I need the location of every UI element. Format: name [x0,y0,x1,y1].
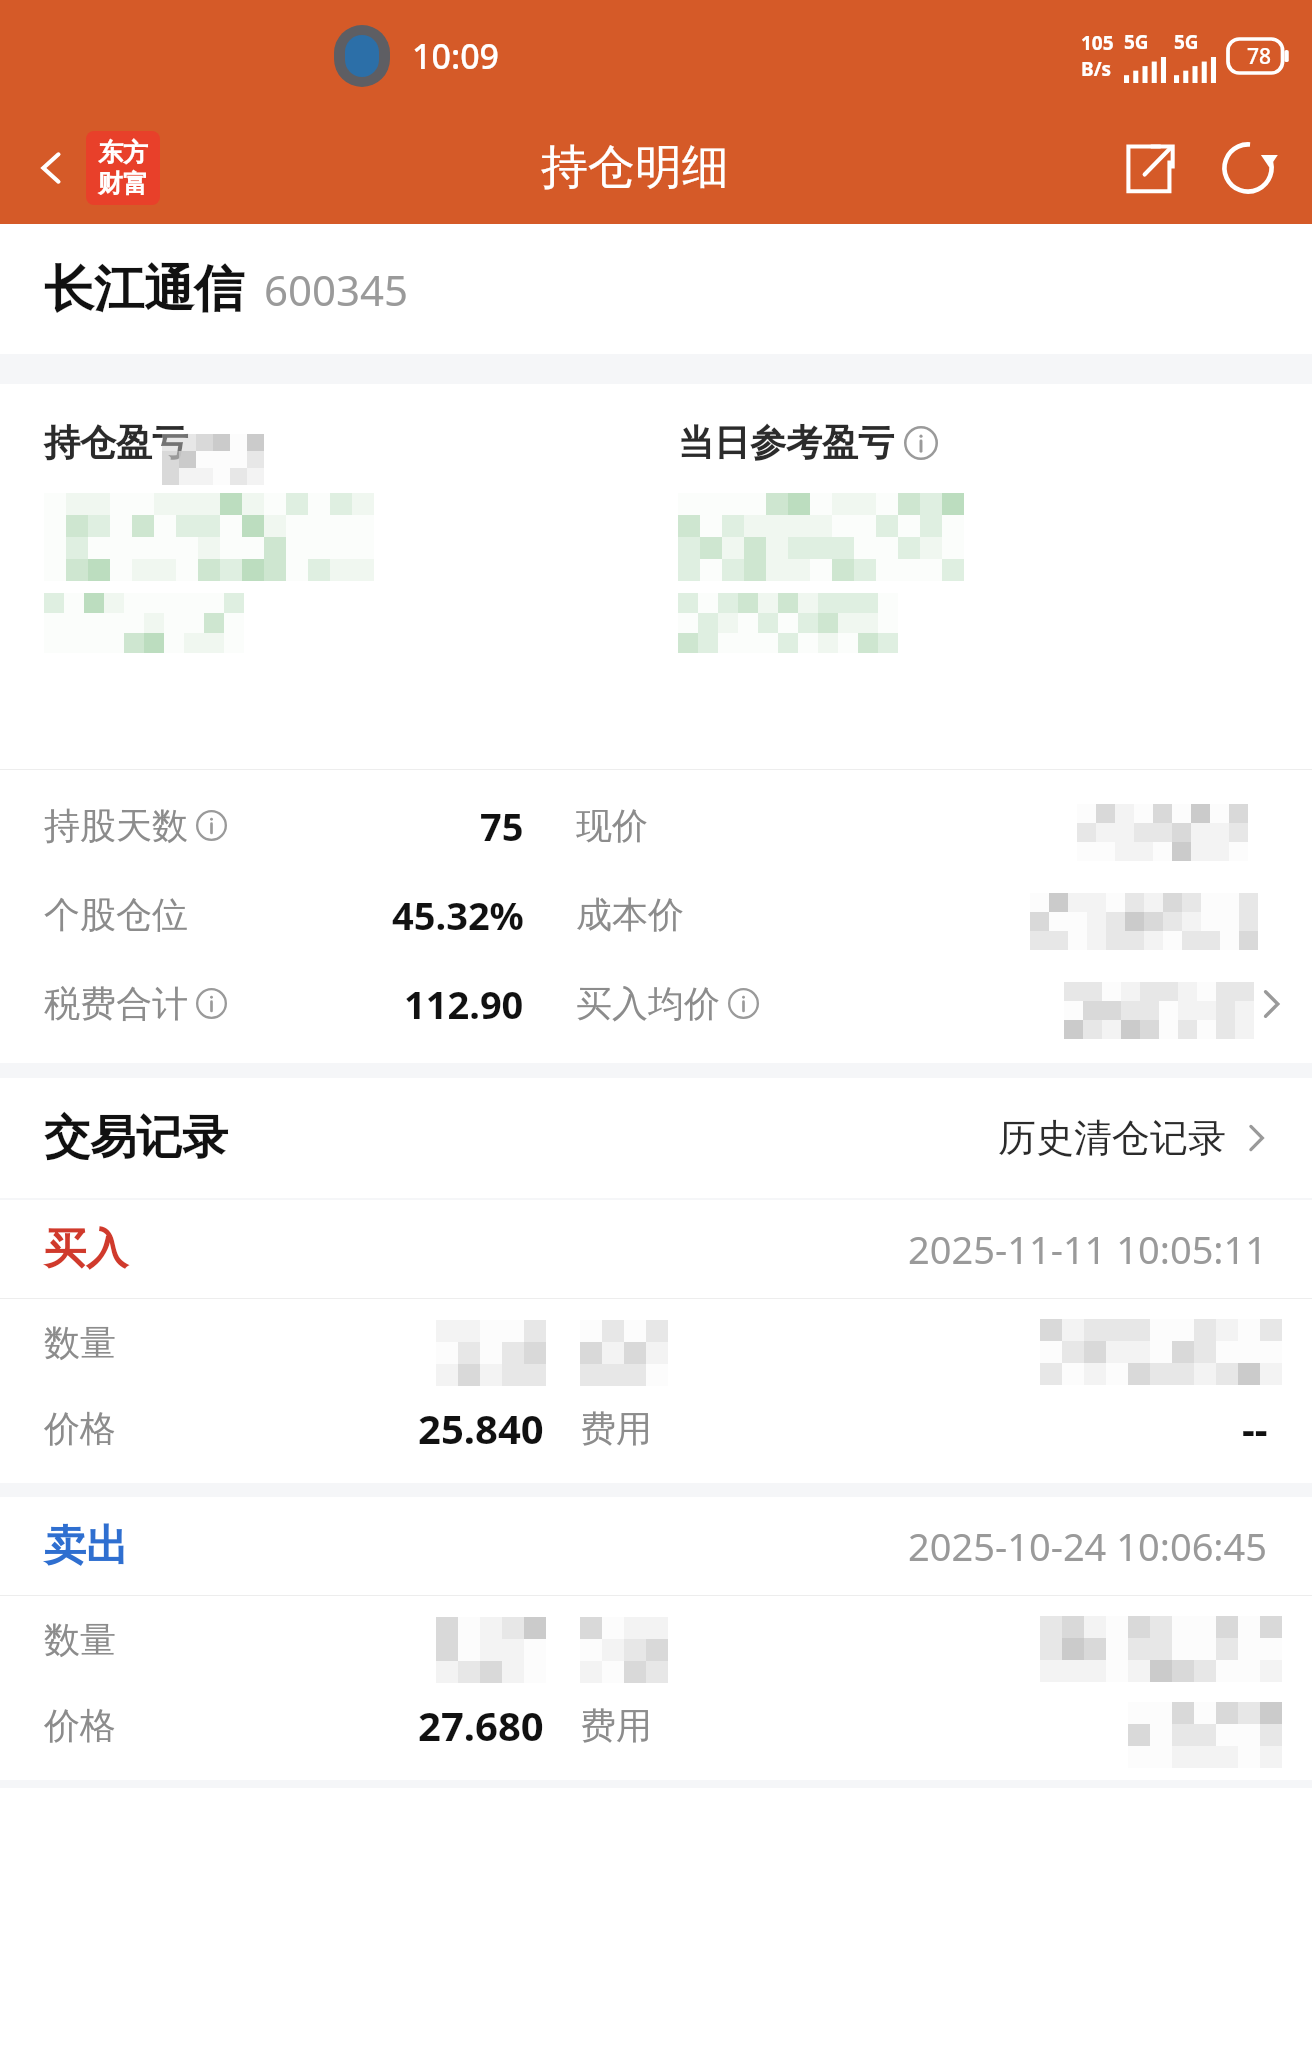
staticText: 600345 [264,261,409,318]
staticText: 费用 [580,1703,652,1748]
staticText: 5G [1174,29,1199,55]
button[interactable]: 持股天数 [0,792,1312,859]
staticText: 东方 [98,137,148,168]
button[interactable]: 历史清仓记录 [990,1106,1280,1170]
staticText: 25.840 [418,1401,544,1455]
button[interactable]: Back [24,140,80,196]
staticText: 费用 [580,1406,652,1451]
button[interactable]: 卖出 [0,1497,1312,1780]
staticText: B/s [1081,56,1112,82]
staticText: 78 [1247,42,1272,71]
staticText: 现价 [576,803,648,848]
staticText: 财富 [98,168,148,199]
staticText: 价格 [44,1406,244,1451]
staticText: 2025-11-11 10:05:11 [908,1223,1268,1275]
staticText: 75 [480,800,524,852]
staticText: 买入 [44,1223,128,1276]
staticText: 税费合计 [44,981,188,1026]
staticText: 5G [1124,29,1149,55]
staticText: 历史清仓记录 [998,1114,1226,1162]
staticText: 交易记录 [44,1109,228,1167]
staticText: 卖出 [44,1520,128,1573]
staticText: 105 [1081,30,1114,56]
button[interactable]: 长江通信 [0,224,1312,354]
staticText: 成本价 [576,892,684,937]
staticText: 价格 [44,1703,244,1748]
staticText: 数量 [44,1320,244,1365]
staticText: 10:09 [412,33,500,79]
staticText: 数量 [44,1617,244,1662]
staticText: 2025-10-24 10:06:45 [908,1520,1268,1572]
button[interactable]: Share [1110,128,1190,208]
button[interactable]: Refresh [1208,128,1288,208]
staticText: 持仓明细 [541,138,729,197]
staticText: 持仓盈亏 [44,420,188,465]
staticText: 当日参考盈亏 [678,420,894,465]
button[interactable]: 税费合计 [0,970,1312,1037]
button[interactable]: 买入 [0,1200,1312,1483]
staticText: 27.680 [418,1698,544,1752]
button[interactable]: 个股仓位 [0,881,1312,948]
staticText: 买入均价 [576,981,720,1026]
staticText: 长江通信 [44,258,244,321]
staticText: 个股仓位 [44,892,188,937]
button[interactable]: 东方财富 [86,131,160,205]
staticText: 持股天数 [44,803,188,848]
staticText: 45.32% [392,889,524,941]
staticText: 112.90 [404,978,524,1030]
staticText: -- [1242,1401,1268,1455]
